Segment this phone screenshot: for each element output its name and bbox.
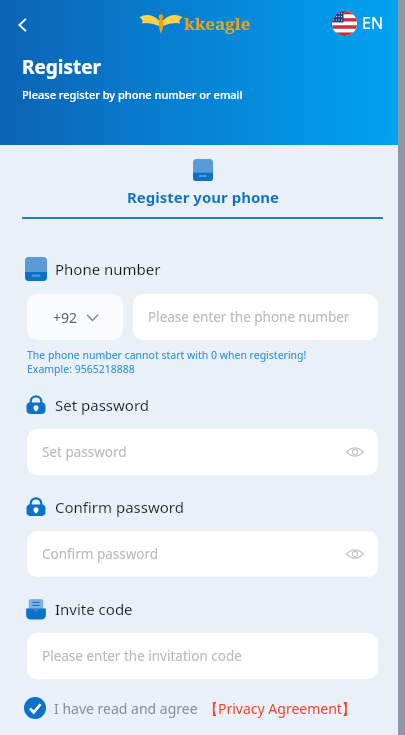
staticText: +92 <box>53 308 78 327</box>
button[interactable]: Set password <box>27 429 378 475</box>
staticText: Confirm password <box>55 497 184 517</box>
button[interactable]: +92 <box>27 294 123 340</box>
staticText: Phone number <box>55 259 161 279</box>
staticText: Register your phone <box>127 187 279 207</box>
button[interactable]: Show password <box>342 541 368 567</box>
staticText: EN <box>362 12 384 34</box>
staticText: Set password <box>55 395 150 415</box>
button[interactable]: EN <box>332 8 384 38</box>
staticText: Set password <box>42 443 127 461</box>
button[interactable]: Please enter the phone number <box>133 294 378 340</box>
staticText: Example: 9565218888 <box>27 362 135 376</box>
staticText: kkeagle <box>184 12 251 35</box>
staticText: Invite code <box>55 599 133 619</box>
staticText: 【Privacy Agreement】 <box>204 699 356 718</box>
staticText: Please enter the phone number <box>148 308 350 326</box>
button[interactable]: Please enter the invitation code <box>27 633 378 679</box>
staticText: Register <box>22 54 102 80</box>
button[interactable]: Show password <box>342 439 368 465</box>
staticText: Please register by phone number or email <box>22 87 243 102</box>
button[interactable]: Register your phone <box>0 159 405 207</box>
button[interactable]: I have read and agree <box>24 697 356 719</box>
staticText: The phone number cannot start with 0 whe… <box>27 348 307 362</box>
staticText: Please enter the invitation code <box>42 647 242 665</box>
button[interactable]: Confirm password <box>27 531 378 577</box>
staticText: Confirm password <box>42 545 159 563</box>
button[interactable]: Back <box>4 6 42 44</box>
staticText: I have read and agree <box>54 699 198 718</box>
